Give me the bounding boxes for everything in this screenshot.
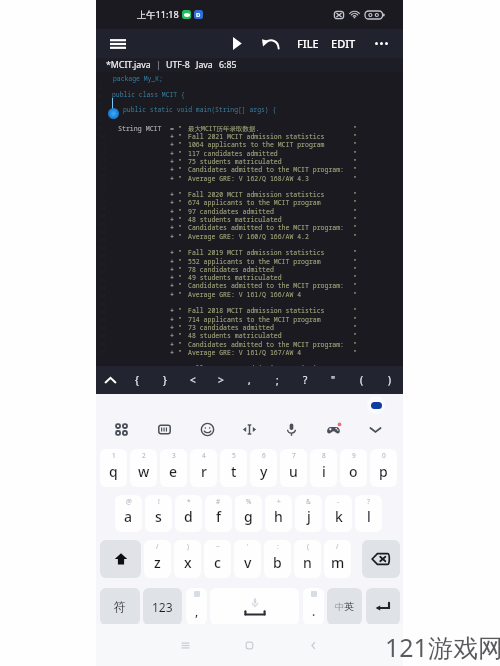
staticText: " [353, 306, 357, 315]
staticText: " [178, 257, 182, 266]
button[interactable]: @ [115, 495, 142, 532]
button[interactable]: Back [300, 624, 326, 666]
staticText: 6 [262, 451, 266, 460]
staticText: e [169, 462, 178, 481]
staticText: " [178, 265, 182, 274]
button[interactable]: Home [236, 624, 262, 666]
staticText: " [353, 348, 357, 357]
staticText: * [187, 497, 191, 506]
button[interactable]: : [264, 540, 291, 578]
button[interactable]: 5 [220, 449, 247, 487]
staticText: package My_K; [113, 74, 163, 83]
button[interactable]: Collapse keyboard [360, 414, 390, 444]
button[interactable]: Clipboard [149, 414, 179, 444]
staticText: ~ [216, 542, 220, 551]
button[interactable]: Space [210, 588, 299, 625]
staticText: " [178, 248, 182, 257]
button[interactable]: 123 [143, 588, 182, 625]
button[interactable]: & [295, 495, 322, 532]
staticText: " [353, 198, 357, 207]
button[interactable]: # [205, 495, 232, 532]
button[interactable]: { [123, 366, 151, 394]
staticText: + [170, 281, 174, 290]
staticText: + [170, 198, 174, 207]
button[interactable]: , [235, 366, 263, 394]
button[interactable]: 9 [340, 449, 367, 487]
button[interactable]: > [207, 366, 235, 394]
button[interactable]: , [186, 588, 207, 625]
staticText: 7 [292, 451, 296, 460]
button[interactable]: / [324, 540, 351, 578]
button[interactable]: ) [375, 366, 403, 394]
button[interactable]: Voice input [276, 414, 306, 444]
button[interactable]: 1 [100, 449, 127, 487]
button[interactable]: 中 [327, 588, 362, 625]
button[interactable]: Collapse toolbar [96, 366, 123, 394]
staticText: z [154, 553, 161, 572]
button[interactable]: + [265, 495, 292, 532]
button[interactable]: Enter [366, 588, 400, 625]
button[interactable]: * [175, 495, 202, 532]
button[interactable]: ( [347, 366, 375, 394]
staticText: w [138, 462, 150, 481]
staticText: , [248, 373, 251, 387]
button[interactable]: EDIT [329, 29, 358, 58]
staticText: ? [367, 497, 370, 506]
button[interactable]: 4 [190, 449, 217, 487]
staticText: + [170, 315, 174, 324]
staticText: " [178, 315, 182, 324]
staticText: + [170, 174, 174, 183]
button[interactable]: ; [263, 366, 291, 394]
button[interactable]: / [144, 540, 171, 578]
button[interactable]: ? [355, 495, 382, 532]
button[interactable]: ~ [204, 540, 231, 578]
staticText: " [178, 331, 182, 340]
button[interactable]: ! [145, 495, 172, 532]
button[interactable]: 3 [160, 449, 187, 487]
button[interactable]: - [325, 495, 352, 532]
button[interactable]: Apps [106, 414, 136, 444]
staticText: Average GRE: V 161/Q 166/AW 4 [188, 290, 302, 299]
staticText: 6:85 [219, 59, 237, 71]
button[interactable]: } [151, 366, 179, 394]
button[interactable]: . [303, 588, 324, 625]
button[interactable]: < [179, 366, 207, 394]
button[interactable]: Emoji [192, 414, 222, 444]
button[interactable]: Run [225, 29, 249, 58]
staticText: 中 [335, 601, 344, 612]
button[interactable]: 符 [100, 588, 140, 625]
staticText: @ [126, 497, 132, 506]
button[interactable]: ( [294, 540, 321, 578]
staticText: 0 [382, 451, 386, 460]
button[interactable]: Games [318, 414, 348, 444]
button[interactable]: 8 [310, 449, 337, 487]
button[interactable]: Backspace [362, 540, 400, 578]
button[interactable]: More options [369, 29, 393, 58]
button[interactable]: Undo [259, 29, 281, 58]
staticText: public class MCIT { [112, 90, 185, 99]
button[interactable]: Text editing [234, 414, 264, 444]
staticText: 4 [202, 451, 206, 460]
button[interactable]: ) [174, 540, 201, 578]
button[interactable]: FILE [294, 29, 322, 58]
button[interactable]: 0 [370, 449, 397, 487]
button[interactable]: Recents [172, 624, 198, 666]
staticText: b [273, 553, 282, 572]
staticText: > [218, 373, 224, 387]
button[interactable]: % [235, 495, 262, 532]
staticText: ) [187, 542, 189, 551]
button[interactable]: 2 [130, 449, 157, 487]
button[interactable]: 7 [280, 449, 307, 487]
button[interactable]: ' [234, 540, 261, 578]
button[interactable]: Menu [106, 32, 130, 56]
staticText: | [156, 59, 161, 71]
staticText: % [246, 497, 252, 506]
button[interactable]: 6 [250, 449, 277, 487]
button[interactable]: Shift [100, 540, 141, 578]
button[interactable]: ? [291, 366, 319, 394]
staticText: FILE [297, 36, 319, 51]
button[interactable]: " [319, 366, 347, 394]
